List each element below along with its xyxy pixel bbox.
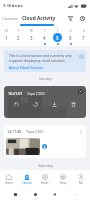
- button[interactable]: Back: [50, 190, 59, 199]
- button[interactable]: Shop: [54, 172, 72, 187]
- staticText: T: [18, 29, 20, 33]
- button[interactable]: Person detected: [42, 144, 47, 149]
- staticText: Smart: [41, 181, 49, 185]
- button[interactable]: W: [25, 29, 38, 45]
- staticText: Cameras: [2, 16, 18, 21]
- staticText: F: [57, 29, 59, 33]
- staticText: Me: [79, 181, 83, 185]
- button[interactable]: S: [77, 29, 90, 45]
- button[interactable]: Cameras: [0, 12, 20, 24]
- staticText: T: [44, 29, 46, 33]
- staticText: This is a beta feature and currently onl…: [9, 53, 72, 63]
- staticText: Home: [5, 181, 13, 185]
- button[interactable]: Dismiss banner: [78, 53, 84, 59]
- button[interactable]: Close player: [78, 89, 83, 94]
- button[interactable]: Clip thumbnail: [6, 138, 40, 155]
- staticText: Tapo C200: [26, 129, 44, 134]
- button[interactable]: Camera: [18, 172, 36, 187]
- staticText: Tapo C200: [27, 91, 45, 96]
- staticText: 2: [17, 35, 20, 41]
- button[interactable]: Rewind 15 seconds: [12, 100, 21, 109]
- staticText: 16:41:01: [8, 91, 23, 96]
- staticText: Camera: [22, 181, 32, 185]
- button[interactable]: Delete: [69, 100, 78, 109]
- button[interactable]: Me: [72, 172, 90, 187]
- button[interactable]: This is a beta feature and currently onl…: [4, 50, 86, 72]
- staticText: 1: [5, 35, 8, 41]
- button[interactable]: More options: [78, 129, 83, 134]
- staticText: M: [5, 29, 8, 33]
- staticText: Cloud Activity: [22, 15, 56, 22]
- staticText: W: [30, 29, 33, 33]
- staticText: 5: [56, 35, 59, 41]
- button[interactable]: Filter: [65, 13, 75, 23]
- staticText: S: [83, 29, 85, 33]
- button[interactable]: Smart: [36, 172, 54, 187]
- staticText: 7: [82, 35, 85, 41]
- button[interactable]: Forward 15 seconds: [31, 100, 40, 109]
- staticText: 14:17:40: [7, 129, 22, 134]
- button[interactable]: F: [51, 29, 64, 45]
- button[interactable]: T: [38, 29, 51, 45]
- button[interactable]: M: [0, 29, 12, 45]
- button[interactable]: Home: [0, 172, 18, 187]
- button[interactable]: 14:17:40: [4, 125, 86, 158]
- staticText: 4: [43, 35, 46, 41]
- staticText: 3: [30, 35, 33, 41]
- staticText: Saturday: [38, 163, 53, 168]
- button[interactable]: Cloud Activity: [20, 12, 58, 24]
- staticText: Shop: [60, 181, 67, 185]
- button[interactable]: Download: [50, 100, 59, 109]
- staticText: About Cloud Services: [9, 65, 44, 70]
- staticText: 9:38: [3, 3, 11, 8]
- button[interactable]: Home: [31, 190, 40, 199]
- button[interactable]: S: [64, 29, 77, 45]
- button[interactable]: Recent apps: [11, 190, 20, 199]
- button[interactable]: T: [12, 29, 25, 45]
- button[interactable]: History: [77, 13, 87, 23]
- staticText: 6: [69, 35, 72, 41]
- staticText: Sunday: [39, 76, 52, 81]
- staticText: S: [70, 29, 72, 33]
